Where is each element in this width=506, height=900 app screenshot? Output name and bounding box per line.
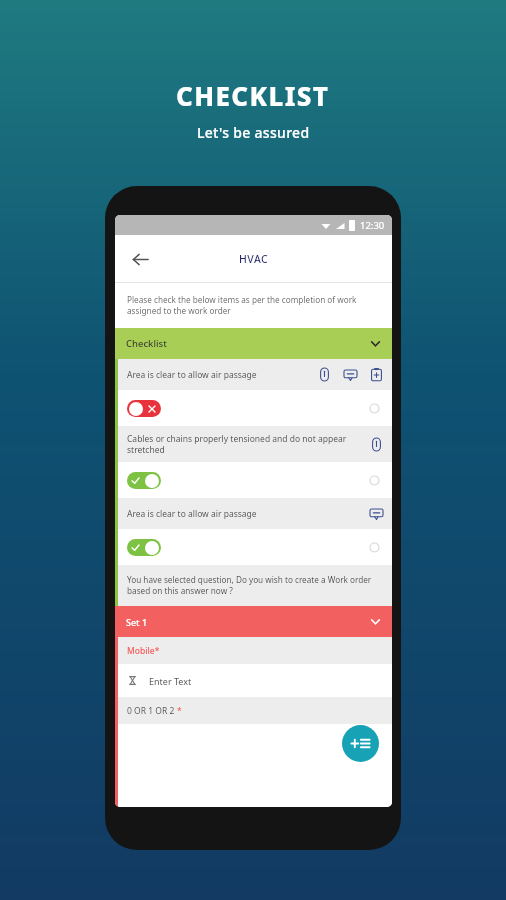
button[interactable]: Back bbox=[124, 243, 156, 275]
button[interactable]: Info bbox=[370, 404, 379, 413]
staticText: Set 1 bbox=[126, 616, 148, 628]
staticText: Cables or chains properly tensioned and … bbox=[127, 433, 370, 455]
button[interactable]: Info bbox=[370, 543, 379, 552]
button[interactable]: Attach bbox=[318, 368, 331, 381]
staticText: 12:30 bbox=[360, 219, 385, 232]
button[interactable]: Add new item bbox=[342, 725, 379, 762]
button[interactable]: Cables or chains properly tensioned and … bbox=[118, 426, 392, 462]
button[interactable]: Area is clear to allow air passage bbox=[118, 359, 392, 390]
staticText: Checklist bbox=[126, 337, 167, 350]
button[interactable]: Yes toggle on bbox=[127, 472, 161, 489]
staticText: Area is clear to allow air passage bbox=[127, 369, 257, 381]
staticText: Please check the below items as per the … bbox=[127, 294, 378, 317]
button[interactable]: Enter Text bbox=[118, 664, 392, 697]
staticText: * bbox=[177, 705, 182, 717]
button[interactable]: Comment bbox=[344, 368, 357, 381]
staticText: Mobile* bbox=[127, 645, 160, 657]
staticText: Enter Text bbox=[149, 675, 192, 687]
button[interactable]: Area is clear to allow air passage bbox=[118, 498, 392, 529]
staticText: Area is clear to allow air passage bbox=[127, 508, 257, 520]
button[interactable]: Set 1 bbox=[115, 606, 392, 637]
staticText: HVAC bbox=[239, 252, 269, 266]
staticText: 0 OR 1 OR 2 bbox=[127, 705, 177, 717]
button[interactable]: Yes toggle on bbox=[127, 539, 161, 556]
button[interactable]: Attach bbox=[370, 438, 383, 451]
button[interactable]: Comment bbox=[370, 507, 383, 520]
staticText: Let's be assured bbox=[197, 123, 310, 142]
button[interactable]: No toggle off bbox=[127, 400, 161, 417]
staticText: You have selected question, Do you wish … bbox=[127, 574, 380, 597]
button[interactable]: Info bbox=[370, 476, 379, 485]
button[interactable]: Checklist item bbox=[370, 368, 383, 381]
button[interactable]: Checklist bbox=[115, 328, 392, 359]
staticText: CHECKLIST bbox=[176, 78, 330, 113]
